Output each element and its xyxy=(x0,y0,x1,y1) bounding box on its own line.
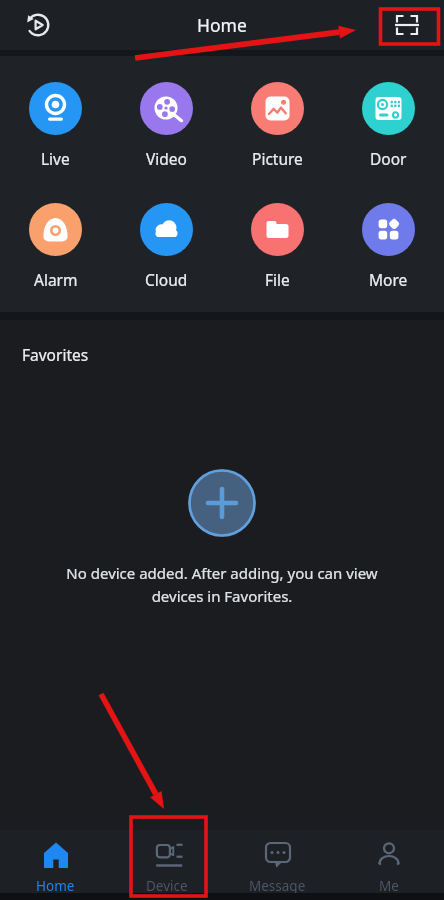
staticText: Home xyxy=(197,13,247,37)
staticText: Live xyxy=(41,148,70,169)
button[interactable]: Me xyxy=(333,830,444,893)
staticText: Device xyxy=(146,877,188,893)
staticText: Home xyxy=(36,877,75,893)
button[interactable]: Alarm xyxy=(0,203,111,290)
button[interactable]: Device xyxy=(111,830,222,893)
staticText: Message xyxy=(249,877,306,893)
button[interactable]: Video xyxy=(111,82,222,169)
button[interactable]: Live xyxy=(0,82,111,169)
button[interactable]: Door xyxy=(333,82,444,169)
button[interactable] xyxy=(391,9,423,41)
button[interactable] xyxy=(188,469,256,537)
staticText: Favorites xyxy=(22,344,89,365)
button[interactable] xyxy=(22,9,54,41)
staticText: No device added. After adding, you can v… xyxy=(0,563,444,606)
button[interactable]: Home xyxy=(0,830,111,893)
staticText: Picture xyxy=(252,148,303,169)
button[interactable]: File xyxy=(222,203,333,290)
staticText: More xyxy=(369,269,408,290)
staticText: Alarm xyxy=(34,269,78,290)
staticText: Video xyxy=(146,148,187,169)
button[interactable]: Picture xyxy=(222,82,333,169)
staticText: Cloud xyxy=(145,269,188,290)
staticText: Me xyxy=(379,877,399,893)
staticText: File xyxy=(265,269,290,290)
button[interactable]: Message xyxy=(222,830,333,893)
staticText: Door xyxy=(370,148,407,169)
button[interactable]: Cloud xyxy=(111,203,222,290)
button[interactable]: More xyxy=(333,203,444,290)
